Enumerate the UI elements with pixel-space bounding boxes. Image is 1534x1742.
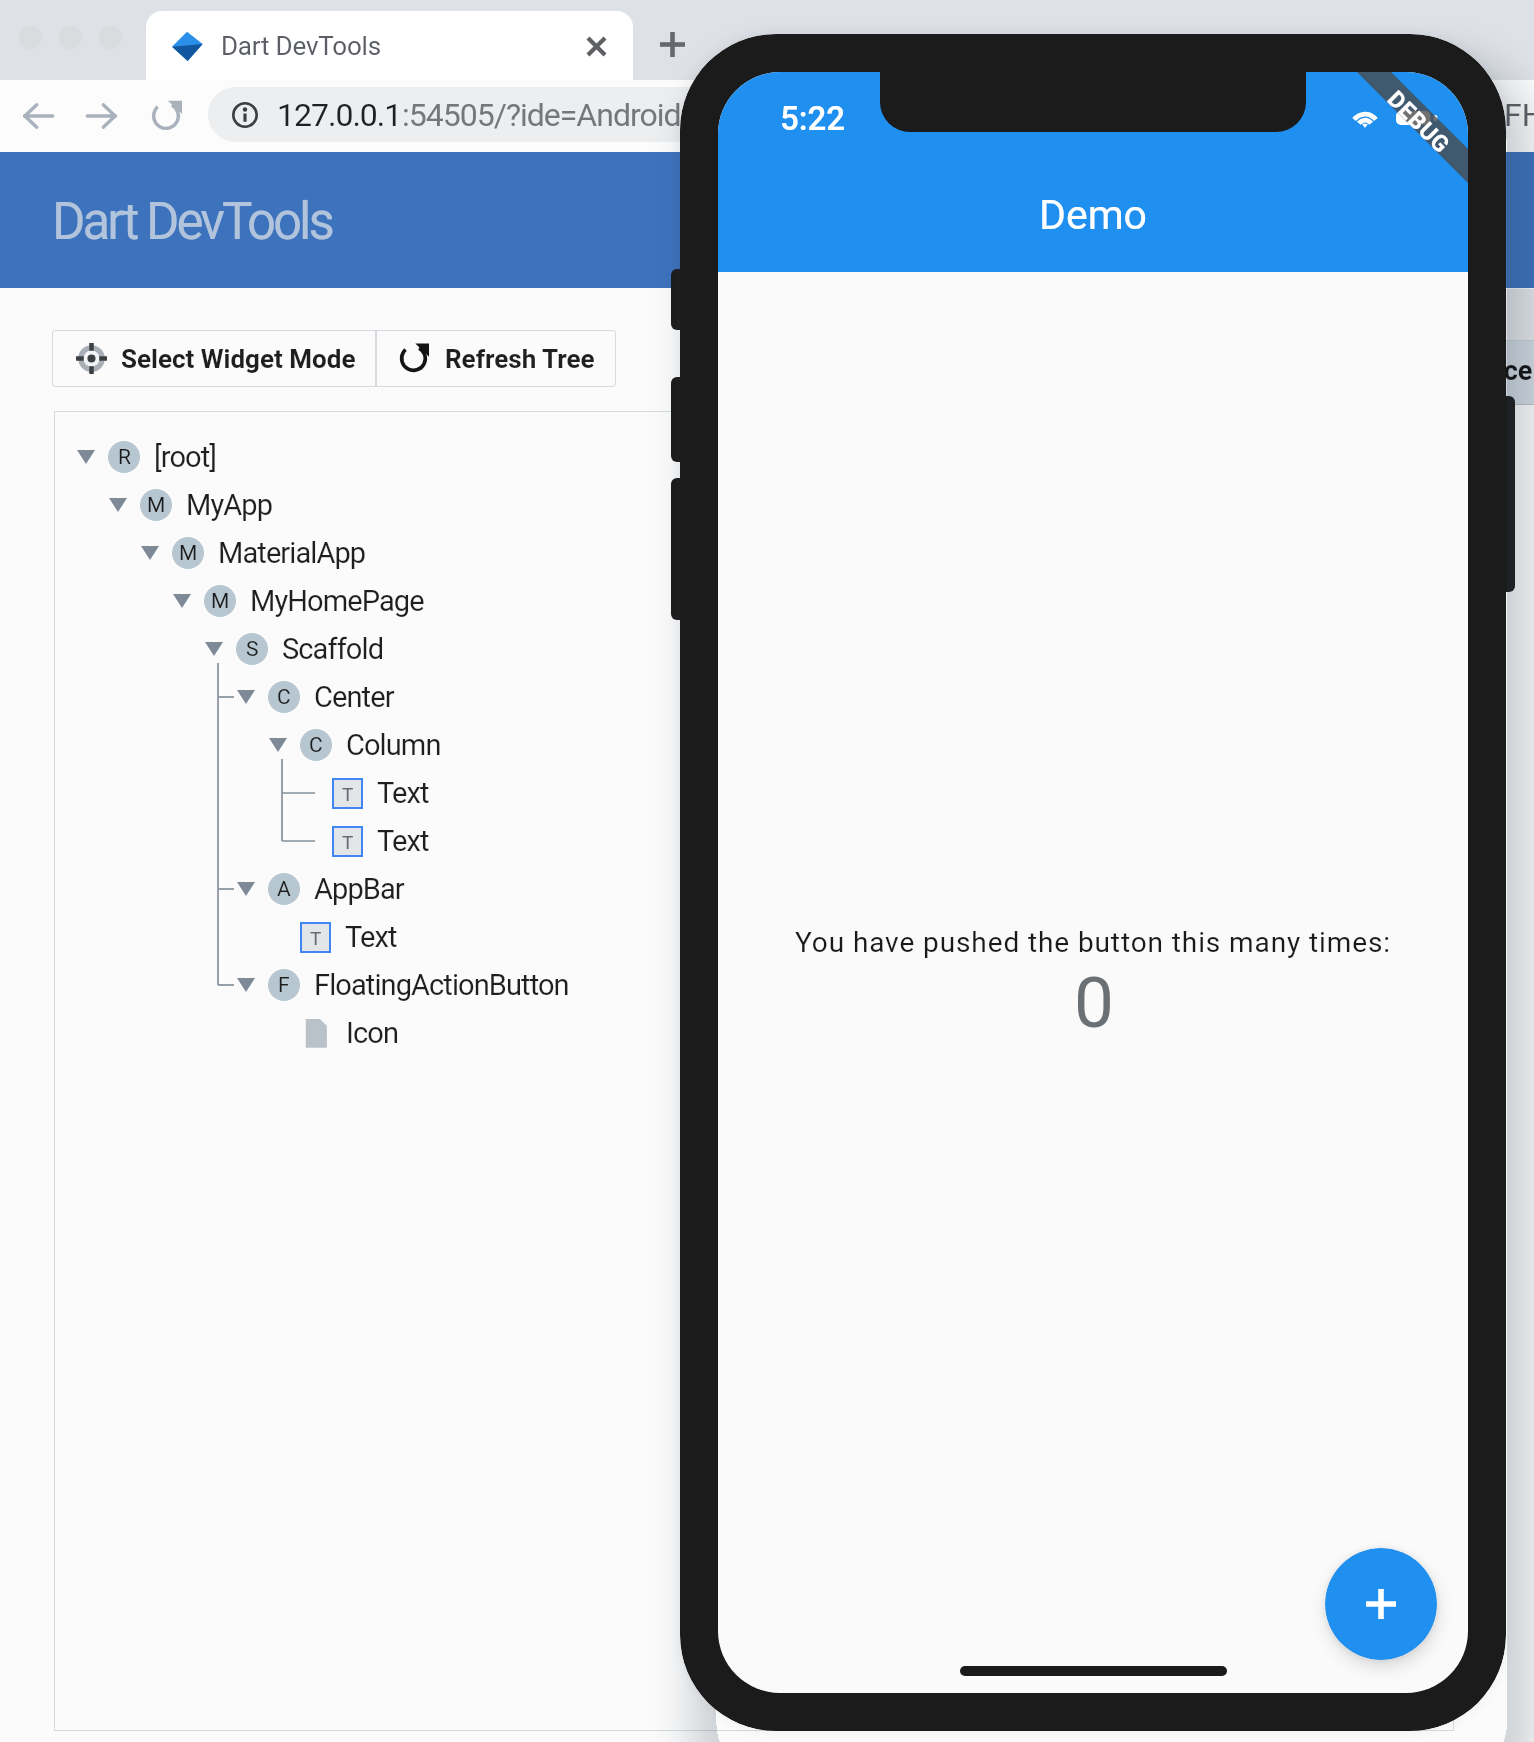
button[interactable]: M xyxy=(54,577,1454,625)
button[interactable]: M xyxy=(54,529,1454,577)
staticText: 0 xyxy=(1074,961,1114,1044)
button[interactable]: C xyxy=(54,673,1454,721)
staticText: Demo xyxy=(1039,191,1147,239)
staticText: T xyxy=(310,927,322,949)
staticText: T xyxy=(342,831,354,853)
button[interactable]: T xyxy=(54,913,1454,961)
button[interactable]: T xyxy=(54,769,1454,817)
button[interactable]: Select Widget Mode xyxy=(76,330,376,387)
staticText: 127.0.0.1 xyxy=(277,96,402,134)
staticText: Performance xyxy=(1374,355,1533,387)
staticText: Column xyxy=(346,728,441,762)
staticText: AppBar xyxy=(314,872,404,906)
button[interactable]: Reload xyxy=(142,92,190,140)
button[interactable]: Increment xyxy=(1325,1548,1437,1660)
button[interactable]: Dart DevTools xyxy=(146,11,633,80)
button[interactable]: R xyxy=(54,433,1454,481)
button[interactable]: T xyxy=(54,817,1454,865)
staticText: MyApp xyxy=(186,488,273,522)
staticText: Text xyxy=(345,920,397,954)
button[interactable]: Back xyxy=(14,92,62,140)
button[interactable]: C xyxy=(54,721,1454,769)
button[interactable]: Refresh Tree xyxy=(398,330,616,387)
staticText: You have pushed the button this many tim… xyxy=(795,926,1392,959)
button[interactable]: 127.0.0.1 xyxy=(208,87,1218,142)
staticText: MyHomePage xyxy=(250,584,424,618)
button[interactable]: Icon xyxy=(54,1009,1454,1057)
staticText: Icon xyxy=(346,1016,399,1050)
staticText: MaterialApp xyxy=(218,536,366,570)
staticText: C xyxy=(309,733,323,758)
staticText: C xyxy=(277,685,291,710)
staticText: A xyxy=(277,877,291,902)
staticText: Dart DevTools xyxy=(52,192,332,252)
staticText: 5:22 xyxy=(780,99,846,138)
staticText: S xyxy=(246,637,259,662)
staticText: FH xyxy=(1504,96,1534,134)
staticText: Text xyxy=(377,824,429,858)
staticText: Text xyxy=(377,776,429,810)
staticText: M xyxy=(179,541,198,566)
staticText: Refresh Tree xyxy=(445,344,595,374)
button[interactable]: New tab xyxy=(650,22,694,66)
button[interactable]: M xyxy=(54,481,1454,529)
staticText: Select Widget Mode xyxy=(121,344,356,374)
button[interactable]: Close tab xyxy=(574,24,618,68)
staticText: M xyxy=(211,589,230,614)
staticText: M xyxy=(147,493,166,518)
staticText: R xyxy=(118,445,131,470)
staticText: :54505/?ide=Android-S xyxy=(402,96,707,134)
button[interactable]: A xyxy=(54,865,1454,913)
button[interactable]: Forward xyxy=(78,92,126,140)
staticText: DEBUG xyxy=(1382,86,1455,159)
staticText: FloatingActionButton xyxy=(314,968,569,1002)
staticText: Scaffold xyxy=(282,632,384,666)
staticText: T xyxy=(342,783,354,805)
button[interactable]: S xyxy=(54,625,1454,673)
staticText: Dart DevTools xyxy=(221,31,381,61)
staticText: [root] xyxy=(154,440,217,474)
button[interactable]: F xyxy=(54,961,1454,1009)
staticText: Center xyxy=(314,680,394,714)
staticText: F xyxy=(278,973,290,998)
